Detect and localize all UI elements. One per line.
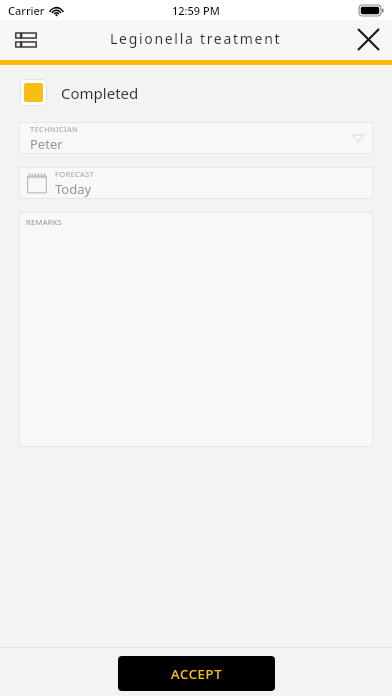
- button[interactable]: FORECAST: [19, 167, 373, 199]
- staticText: 12:59 PM: [172, 3, 220, 18]
- staticText: ACCEPT: [171, 665, 223, 683]
- button[interactable]: Close: [350, 21, 386, 57]
- button[interactable]: Menu: [8, 22, 44, 58]
- staticText: Completed: [61, 83, 139, 103]
- staticText: TECHNICIAN: [30, 124, 79, 134]
- staticText: REMARKS: [26, 217, 63, 227]
- staticText: Carrier: [8, 3, 45, 18]
- staticText: Today: [55, 180, 92, 198]
- button[interactable]: ACCEPT: [118, 656, 275, 691]
- button[interactable]: TECHNICIAN: [19, 122, 373, 154]
- staticText: FORECAST: [55, 169, 95, 179]
- staticText: Legionella treatment: [110, 29, 282, 48]
- staticText: Peter: [30, 135, 63, 153]
- button[interactable]: Completed: [20, 79, 372, 106]
